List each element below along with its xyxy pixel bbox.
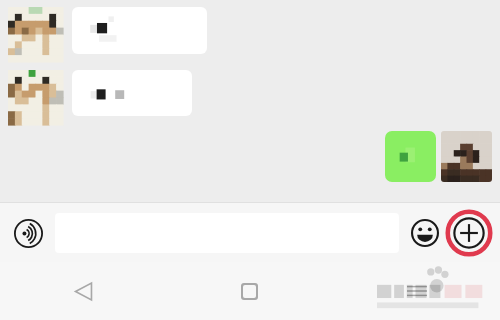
button[interactable]: More — [445, 209, 493, 257]
button[interactable] — [72, 70, 192, 116]
button[interactable]: Voice message — [7, 212, 49, 254]
button[interactable]: Emoji — [407, 215, 443, 251]
button[interactable]: Recent apps — [333, 262, 500, 320]
button[interactable]: Back — [0, 262, 166, 320]
button[interactable] — [385, 131, 436, 182]
button[interactable] — [72, 7, 207, 54]
button[interactable]: Home — [166, 262, 333, 320]
